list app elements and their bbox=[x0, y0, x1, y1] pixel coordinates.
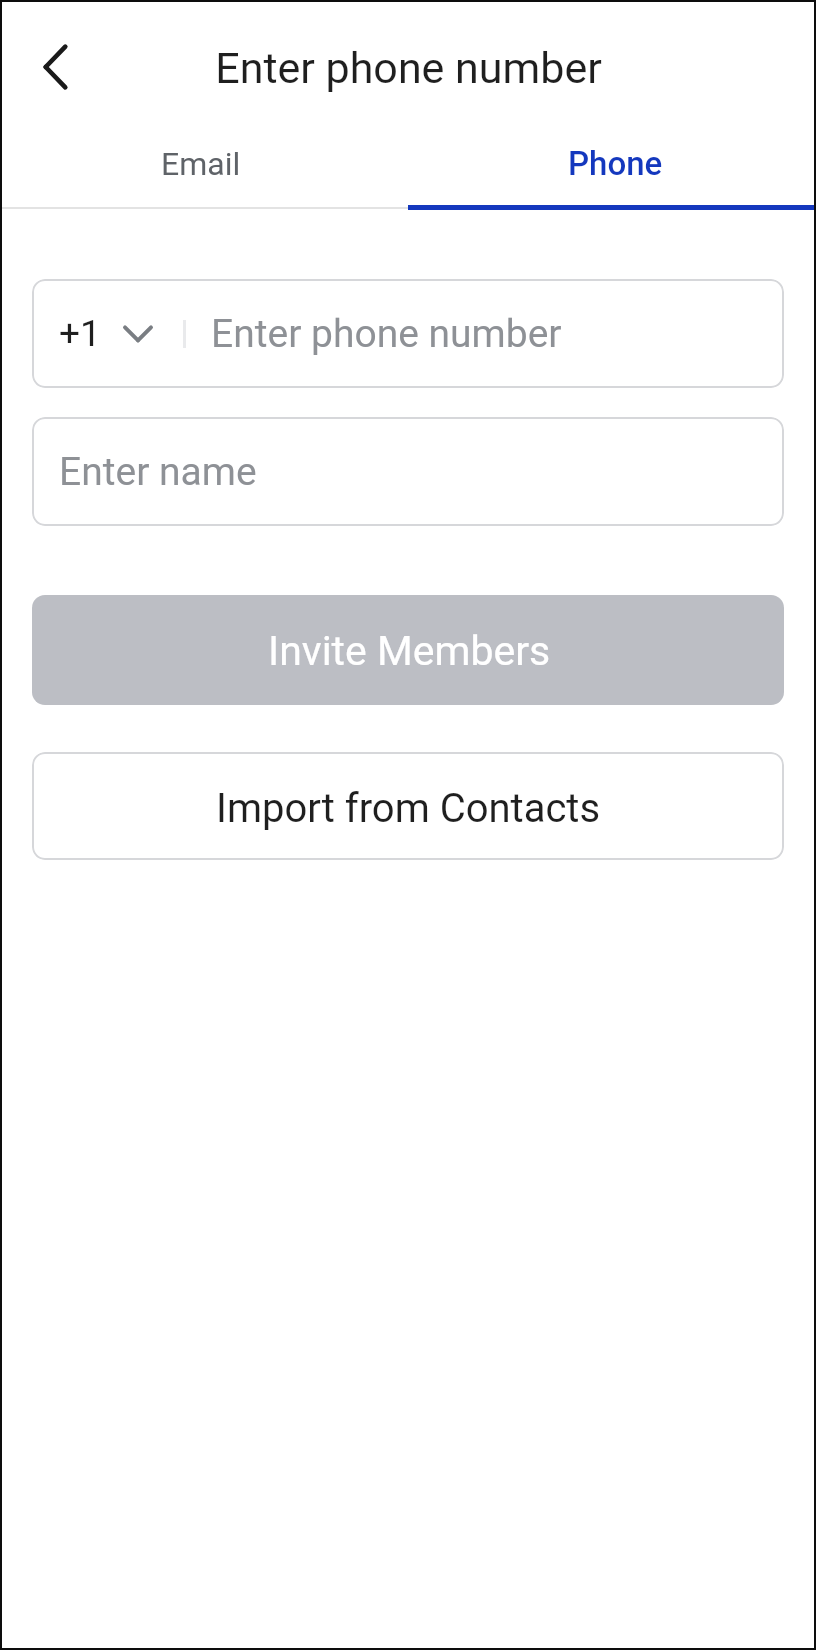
button[interactable]: Phone bbox=[408, 136, 816, 210]
button[interactable]: Select country code bbox=[32, 279, 784, 388]
button[interactable]: Select country code bbox=[32, 279, 183, 388]
button[interactable]: Back bbox=[12, 27, 92, 107]
staticText: Enter phone number bbox=[215, 43, 602, 93]
button[interactable]: Email bbox=[0, 136, 408, 210]
staticText: Import from Contacts bbox=[216, 785, 601, 832]
staticText: Enter name bbox=[59, 449, 257, 495]
button[interactable]: Enter name bbox=[32, 417, 784, 526]
staticText: +1 bbox=[59, 312, 101, 355]
staticText: Invite Members bbox=[268, 627, 551, 675]
staticText: Phone bbox=[568, 144, 663, 183]
button[interactable]: Import from Contacts bbox=[32, 752, 784, 860]
button[interactable]: Invite Members bbox=[32, 595, 784, 705]
staticText: Enter phone number bbox=[211, 311, 562, 357]
staticText: Email bbox=[161, 145, 241, 183]
